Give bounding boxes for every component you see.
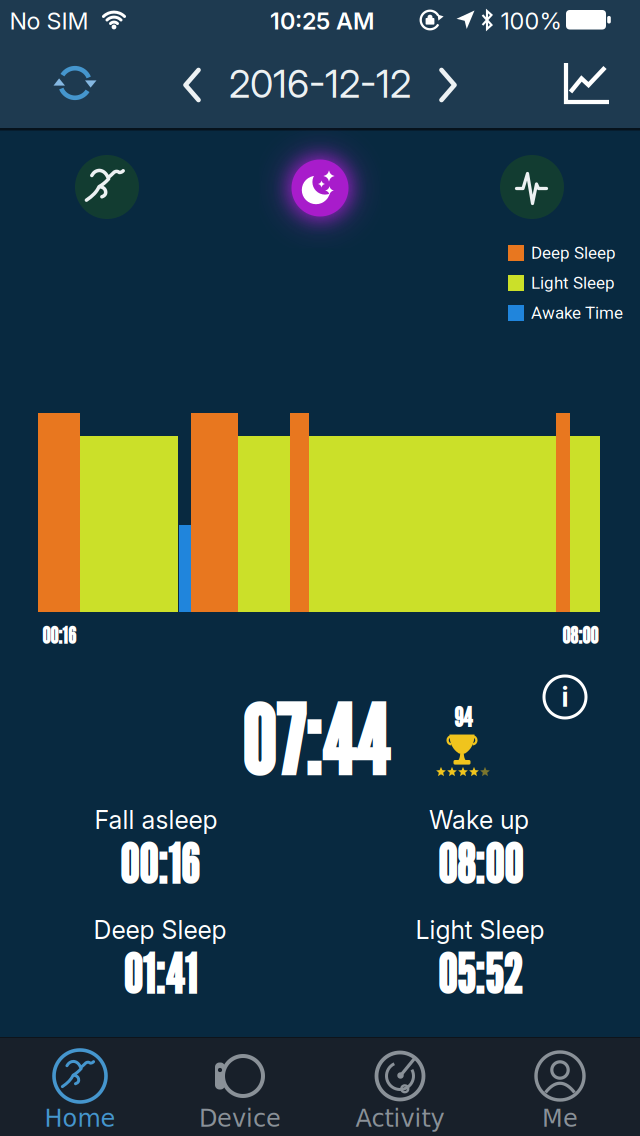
- button[interactable]: Me: [480, 1037, 640, 1136]
- staticText: Home: [44, 1104, 115, 1132]
- button[interactable]: Next day: [438, 67, 458, 102]
- staticText: Wake up: [429, 805, 529, 835]
- button[interactable]: Sleep: [283, 151, 357, 225]
- staticText: Awake Time: [531, 303, 623, 323]
- button[interactable]: Activity: [75, 155, 139, 219]
- staticText: i: [561, 681, 568, 713]
- staticText: Activity: [355, 1104, 444, 1132]
- button[interactable]: Activity: [320, 1037, 480, 1136]
- staticText: 00:16: [42, 621, 76, 649]
- staticText: Deep Sleep: [93, 915, 226, 945]
- staticText: 2016-12-12: [229, 61, 411, 107]
- staticText: No SIM: [9, 7, 88, 35]
- staticText: 08:00: [562, 621, 598, 649]
- button[interactable]: Info: [543, 675, 587, 719]
- staticText: 07:44: [241, 682, 389, 798]
- staticText: Fall asleep: [94, 805, 217, 835]
- staticText: Light Sleep: [531, 273, 615, 293]
- staticText: 100%: [500, 7, 561, 35]
- button[interactable]: Home: [0, 1037, 160, 1136]
- button[interactable]: History: [562, 61, 612, 107]
- staticText: 05:52: [437, 942, 522, 1006]
- button[interactable]: Heart rate: [500, 155, 564, 219]
- staticText: 10:25 AM: [270, 7, 374, 35]
- staticText: 08:00: [437, 832, 522, 896]
- staticText: 01:41: [123, 942, 197, 1006]
- staticText: Deep Sleep: [531, 243, 616, 263]
- staticText: Device: [199, 1104, 281, 1132]
- staticText: 94: [454, 701, 472, 733]
- button[interactable]: Previous day: [182, 67, 202, 102]
- staticText: Light Sleep: [415, 915, 544, 945]
- staticText: Me: [542, 1104, 578, 1132]
- button[interactable]: Device: [160, 1037, 320, 1136]
- staticText: 00:16: [119, 832, 198, 896]
- button[interactable]: Sync: [47, 56, 103, 110]
